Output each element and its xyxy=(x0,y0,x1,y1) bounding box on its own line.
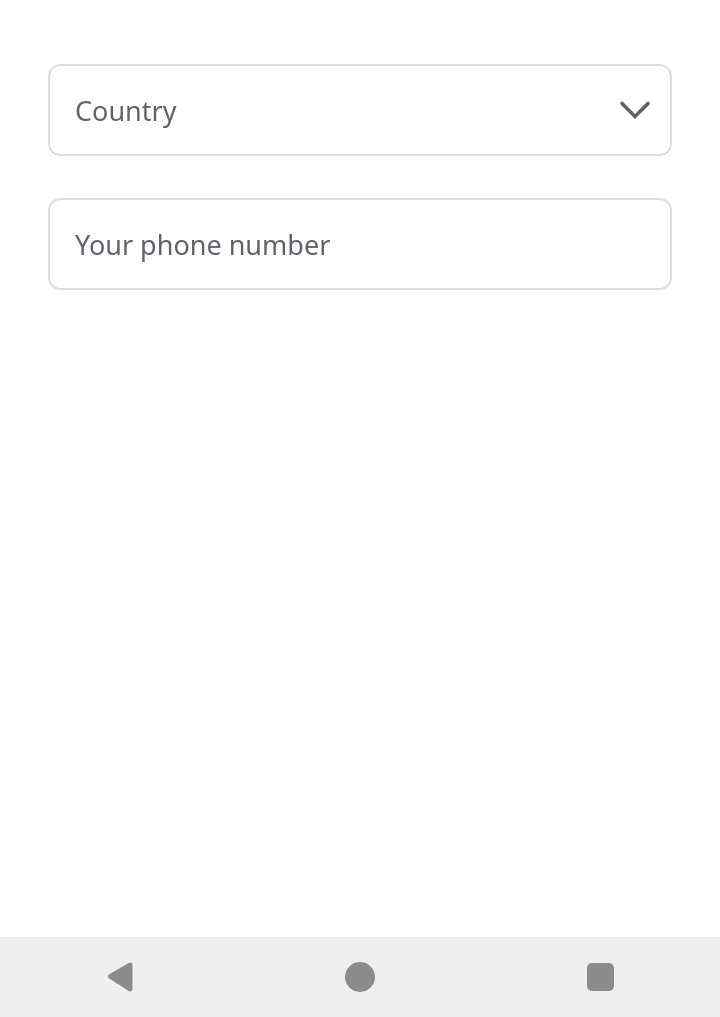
staticText: Country xyxy=(75,92,620,129)
other: Open country list xyxy=(620,95,650,125)
button[interactable]: Your phone number xyxy=(48,198,672,290)
button[interactable]: Back xyxy=(0,937,240,1017)
staticText: Your phone number xyxy=(75,226,331,263)
button[interactable]: Home xyxy=(240,937,480,1017)
button[interactable]: Country xyxy=(48,64,672,156)
button[interactable]: Recent apps xyxy=(480,937,720,1017)
